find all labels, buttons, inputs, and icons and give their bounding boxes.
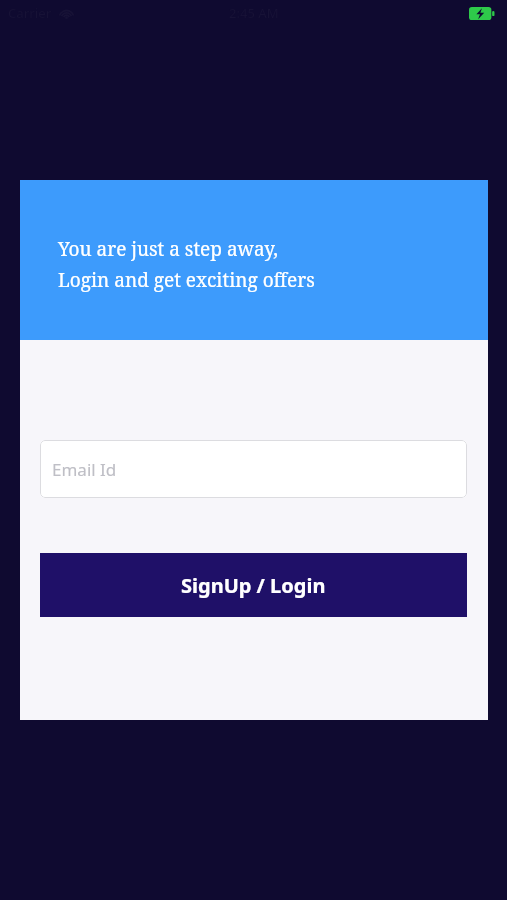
button[interactable]: SignUp / Login bbox=[40, 553, 467, 617]
staticText: SignUp / Login bbox=[181, 572, 326, 599]
button[interactable]: Email Id bbox=[40, 440, 467, 498]
other: Battery charging bbox=[469, 7, 495, 20]
staticText: You are just a step away, bbox=[58, 236, 279, 262]
staticText: Email Id bbox=[52, 458, 117, 481]
staticText: Login and get exciting offers bbox=[58, 267, 315, 293]
